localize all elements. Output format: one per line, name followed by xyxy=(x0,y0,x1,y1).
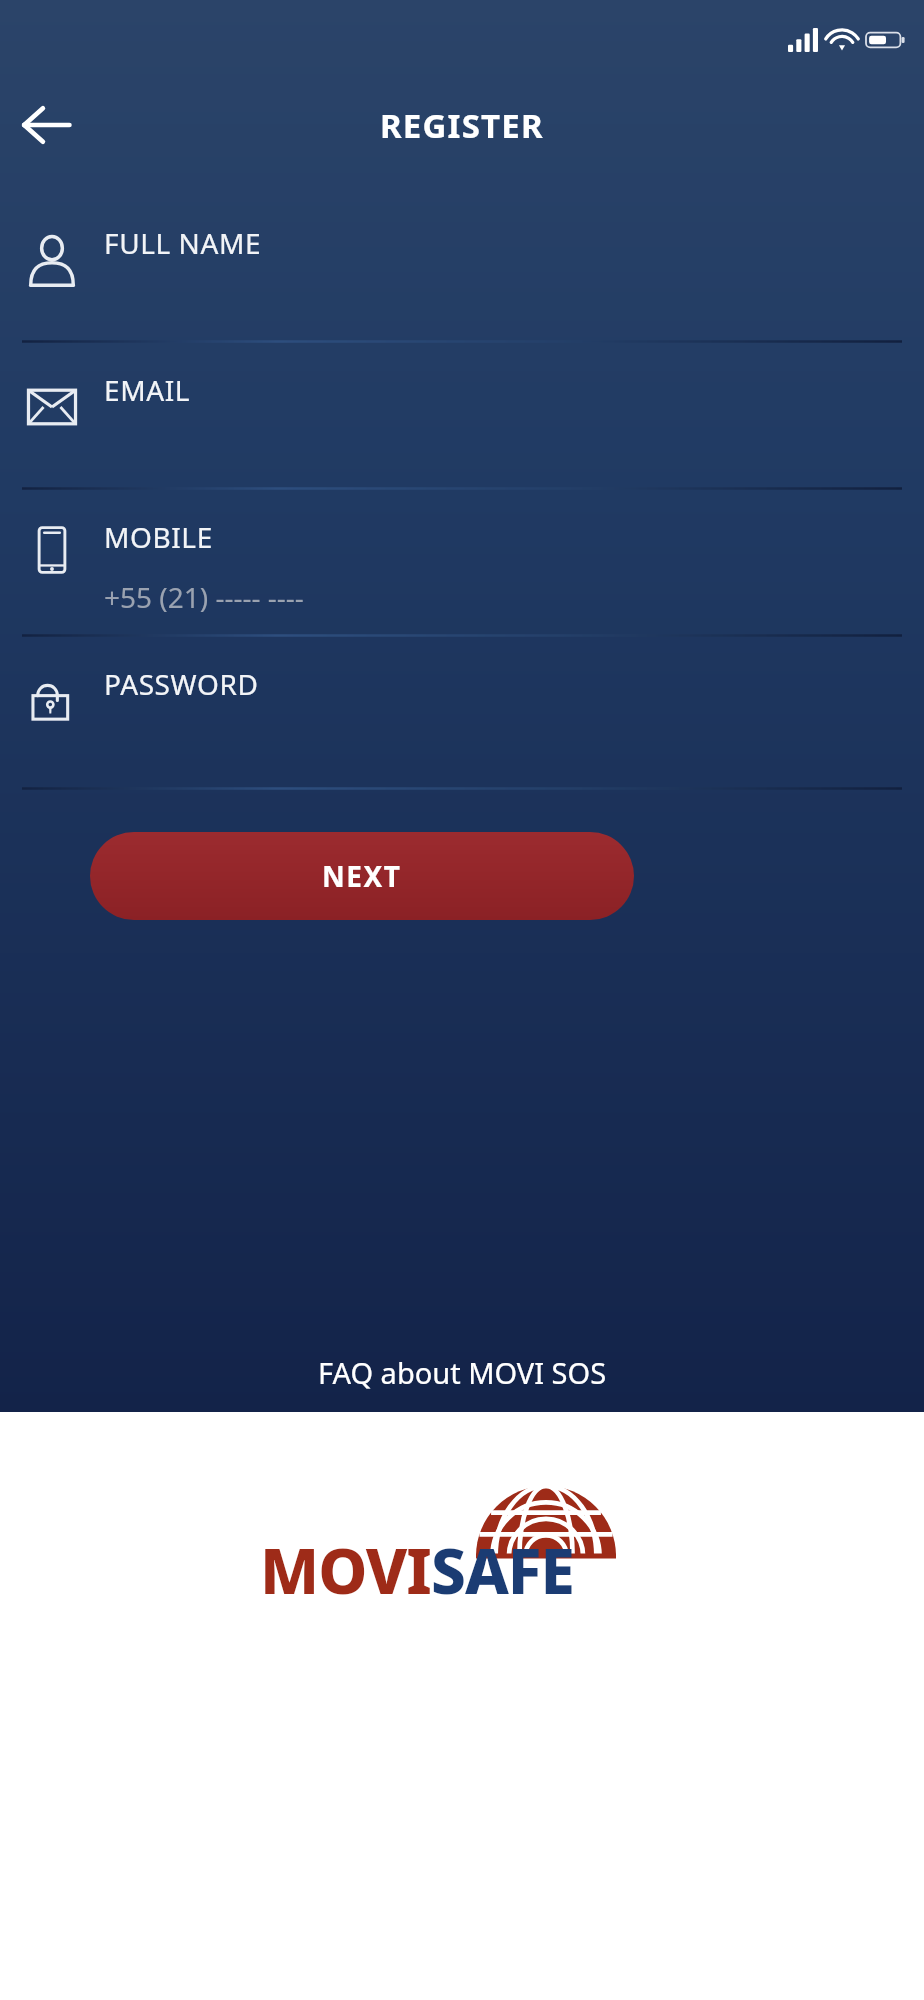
staticText: REGISTER xyxy=(380,103,544,148)
staticText: NEXT xyxy=(322,857,402,895)
staticText: FAQ about MOVI SOS xyxy=(318,1353,607,1392)
button[interactable]: FAQ about MOVI SOS xyxy=(294,1341,631,1404)
staticText: FULL NAME xyxy=(104,224,262,262)
staticText: EMAIL xyxy=(104,371,191,409)
staticText: MOBILE xyxy=(104,518,213,556)
staticText: PASSWORD xyxy=(104,665,259,703)
staticText: SAFE xyxy=(431,1528,574,1612)
button[interactable]: EMAIL xyxy=(0,343,924,487)
button[interactable]: PASSWORD xyxy=(0,637,924,787)
staticText: +55 (21) ----- ---- xyxy=(104,578,304,616)
button[interactable]: MOVISAFE logo xyxy=(242,1468,682,1618)
button[interactable]: NEXT xyxy=(90,832,634,920)
button[interactable]: MOBILE xyxy=(0,490,924,634)
staticText: MOVI xyxy=(260,1528,431,1612)
button[interactable]: Back xyxy=(10,90,80,160)
button[interactable]: FULL NAME xyxy=(0,196,924,340)
